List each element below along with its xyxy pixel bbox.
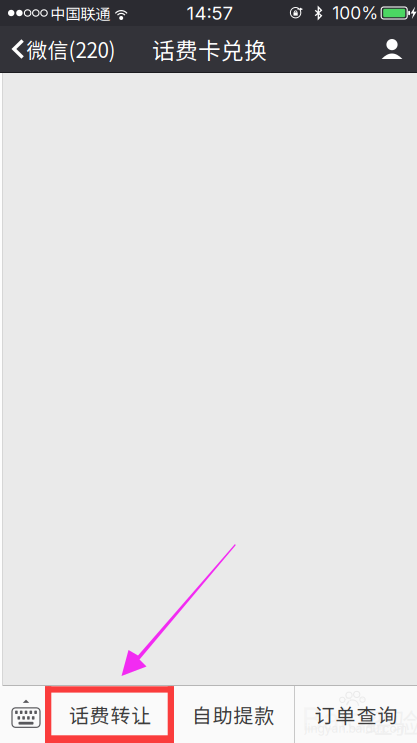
staticText: 100%	[332, 2, 378, 23]
button[interactable]: 自助提款	[172, 686, 294, 743]
staticText: 中国联通	[50, 2, 110, 24]
staticText: 14:57	[186, 2, 233, 24]
button[interactable]: Keyboard	[0, 686, 48, 743]
staticText: 订单查询	[315, 700, 397, 729]
staticText: 话费转让	[69, 700, 151, 729]
staticText: 微信(220)	[26, 34, 115, 64]
button[interactable]: 话费转让	[49, 686, 171, 743]
button[interactable]: 订单查询	[295, 686, 417, 743]
staticText: Baidu	[301, 699, 383, 738]
staticText: 经验	[364, 701, 417, 742]
staticText: 话费卡兑换	[152, 33, 267, 65]
staticText: jingyan.baidu.com	[304, 721, 407, 736]
button[interactable]: 微信(220)	[0, 26, 123, 72]
button[interactable]: Account	[367, 26, 417, 72]
staticText: 自助提款	[192, 700, 274, 729]
